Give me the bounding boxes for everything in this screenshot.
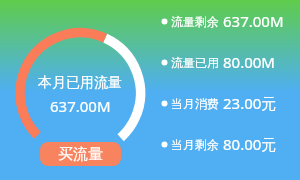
staticText: 流量剩余 (171, 14, 219, 29)
staticText: 买流量 (58, 145, 103, 164)
button[interactable]: 流量已用 (161, 52, 275, 72)
staticText: 本月已用流量 (38, 74, 122, 92)
staticText: 80.00M (223, 52, 275, 72)
staticText: 当月剩余 (171, 137, 219, 152)
staticText: 当月消费 (171, 96, 219, 111)
staticText: 流量已用 (171, 55, 219, 70)
staticText: 80.00元 (223, 134, 277, 154)
button[interactable]: 当月剩余 (161, 134, 277, 154)
button[interactable]: 流量剩余 (161, 11, 284, 31)
button[interactable]: 买流量 (40, 142, 121, 166)
staticText: 637.00M (223, 11, 284, 31)
staticText: 23.00元 (223, 93, 277, 113)
button[interactable]: 当月消费 (161, 93, 277, 113)
staticText: 637.00M (50, 96, 111, 116)
